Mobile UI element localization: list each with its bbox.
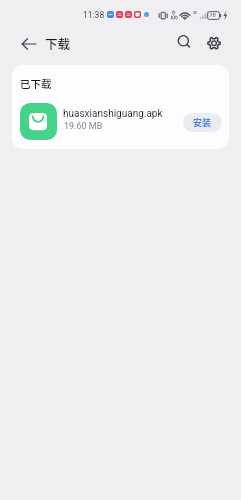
button[interactable]: Back: [14, 29, 44, 59]
staticText: 11:38: [83, 10, 105, 20]
staticText: huasxianshiguang.apk: [63, 108, 163, 120]
button[interactable]: Settings: [198, 28, 228, 58]
staticText: 19.60 MB: [64, 121, 103, 132]
staticText: 78: [209, 11, 216, 18]
staticText: 安装: [193, 116, 212, 129]
button[interactable]: 安装: [183, 113, 222, 132]
staticText: 已下载: [20, 76, 52, 91]
button[interactable]: Search: [169, 28, 199, 58]
staticText: 下载: [45, 34, 71, 52]
